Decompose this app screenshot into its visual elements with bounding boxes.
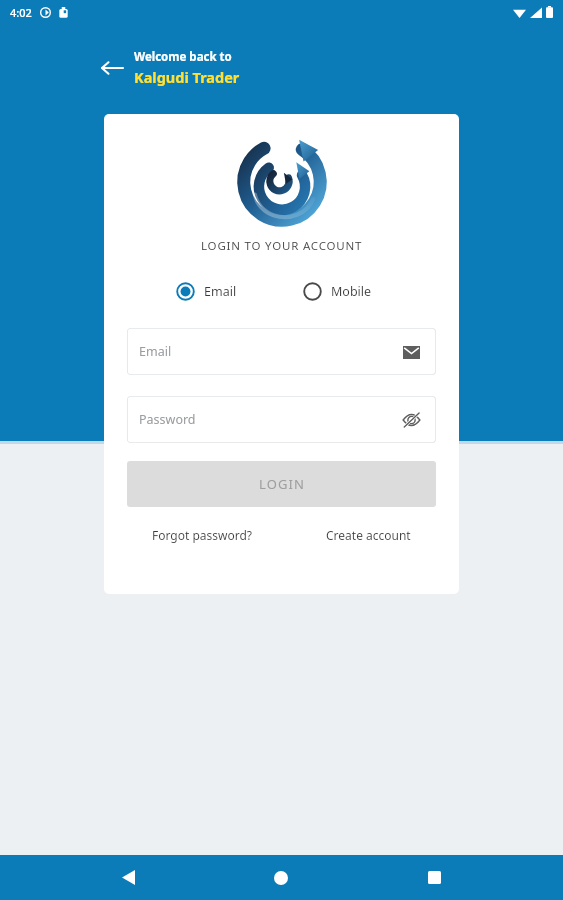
button[interactable]: Show password xyxy=(398,407,424,433)
staticText: Create account xyxy=(326,527,411,543)
staticText: Mobile xyxy=(331,283,372,300)
button[interactable]: Email xyxy=(127,328,436,375)
staticText: LOGIN xyxy=(259,475,305,493)
button[interactable]: Home xyxy=(257,855,305,900)
staticText: Email xyxy=(204,283,237,300)
staticText: LOGIN TO YOUR ACCOUNT xyxy=(201,238,363,254)
button[interactable]: Forgot password? xyxy=(148,523,257,547)
button[interactable]: Email xyxy=(398,339,424,365)
button[interactable]: Password xyxy=(127,396,436,443)
staticText: Email xyxy=(139,343,172,360)
button[interactable]: Back xyxy=(92,48,132,88)
button[interactable]: Mobile xyxy=(303,282,372,301)
staticText: Welcome back to xyxy=(134,49,232,65)
staticText: Kalgudi Trader xyxy=(134,67,240,87)
staticText: 4:02 xyxy=(10,5,32,20)
button[interactable]: Recent apps xyxy=(410,855,458,900)
button[interactable]: Create account xyxy=(322,523,415,547)
button[interactable]: Back xyxy=(104,855,152,900)
staticText: Forgot password? xyxy=(152,527,253,543)
staticText: Password xyxy=(139,411,196,428)
button[interactable]: Email xyxy=(176,282,237,301)
button[interactable]: LOGIN xyxy=(127,461,436,507)
